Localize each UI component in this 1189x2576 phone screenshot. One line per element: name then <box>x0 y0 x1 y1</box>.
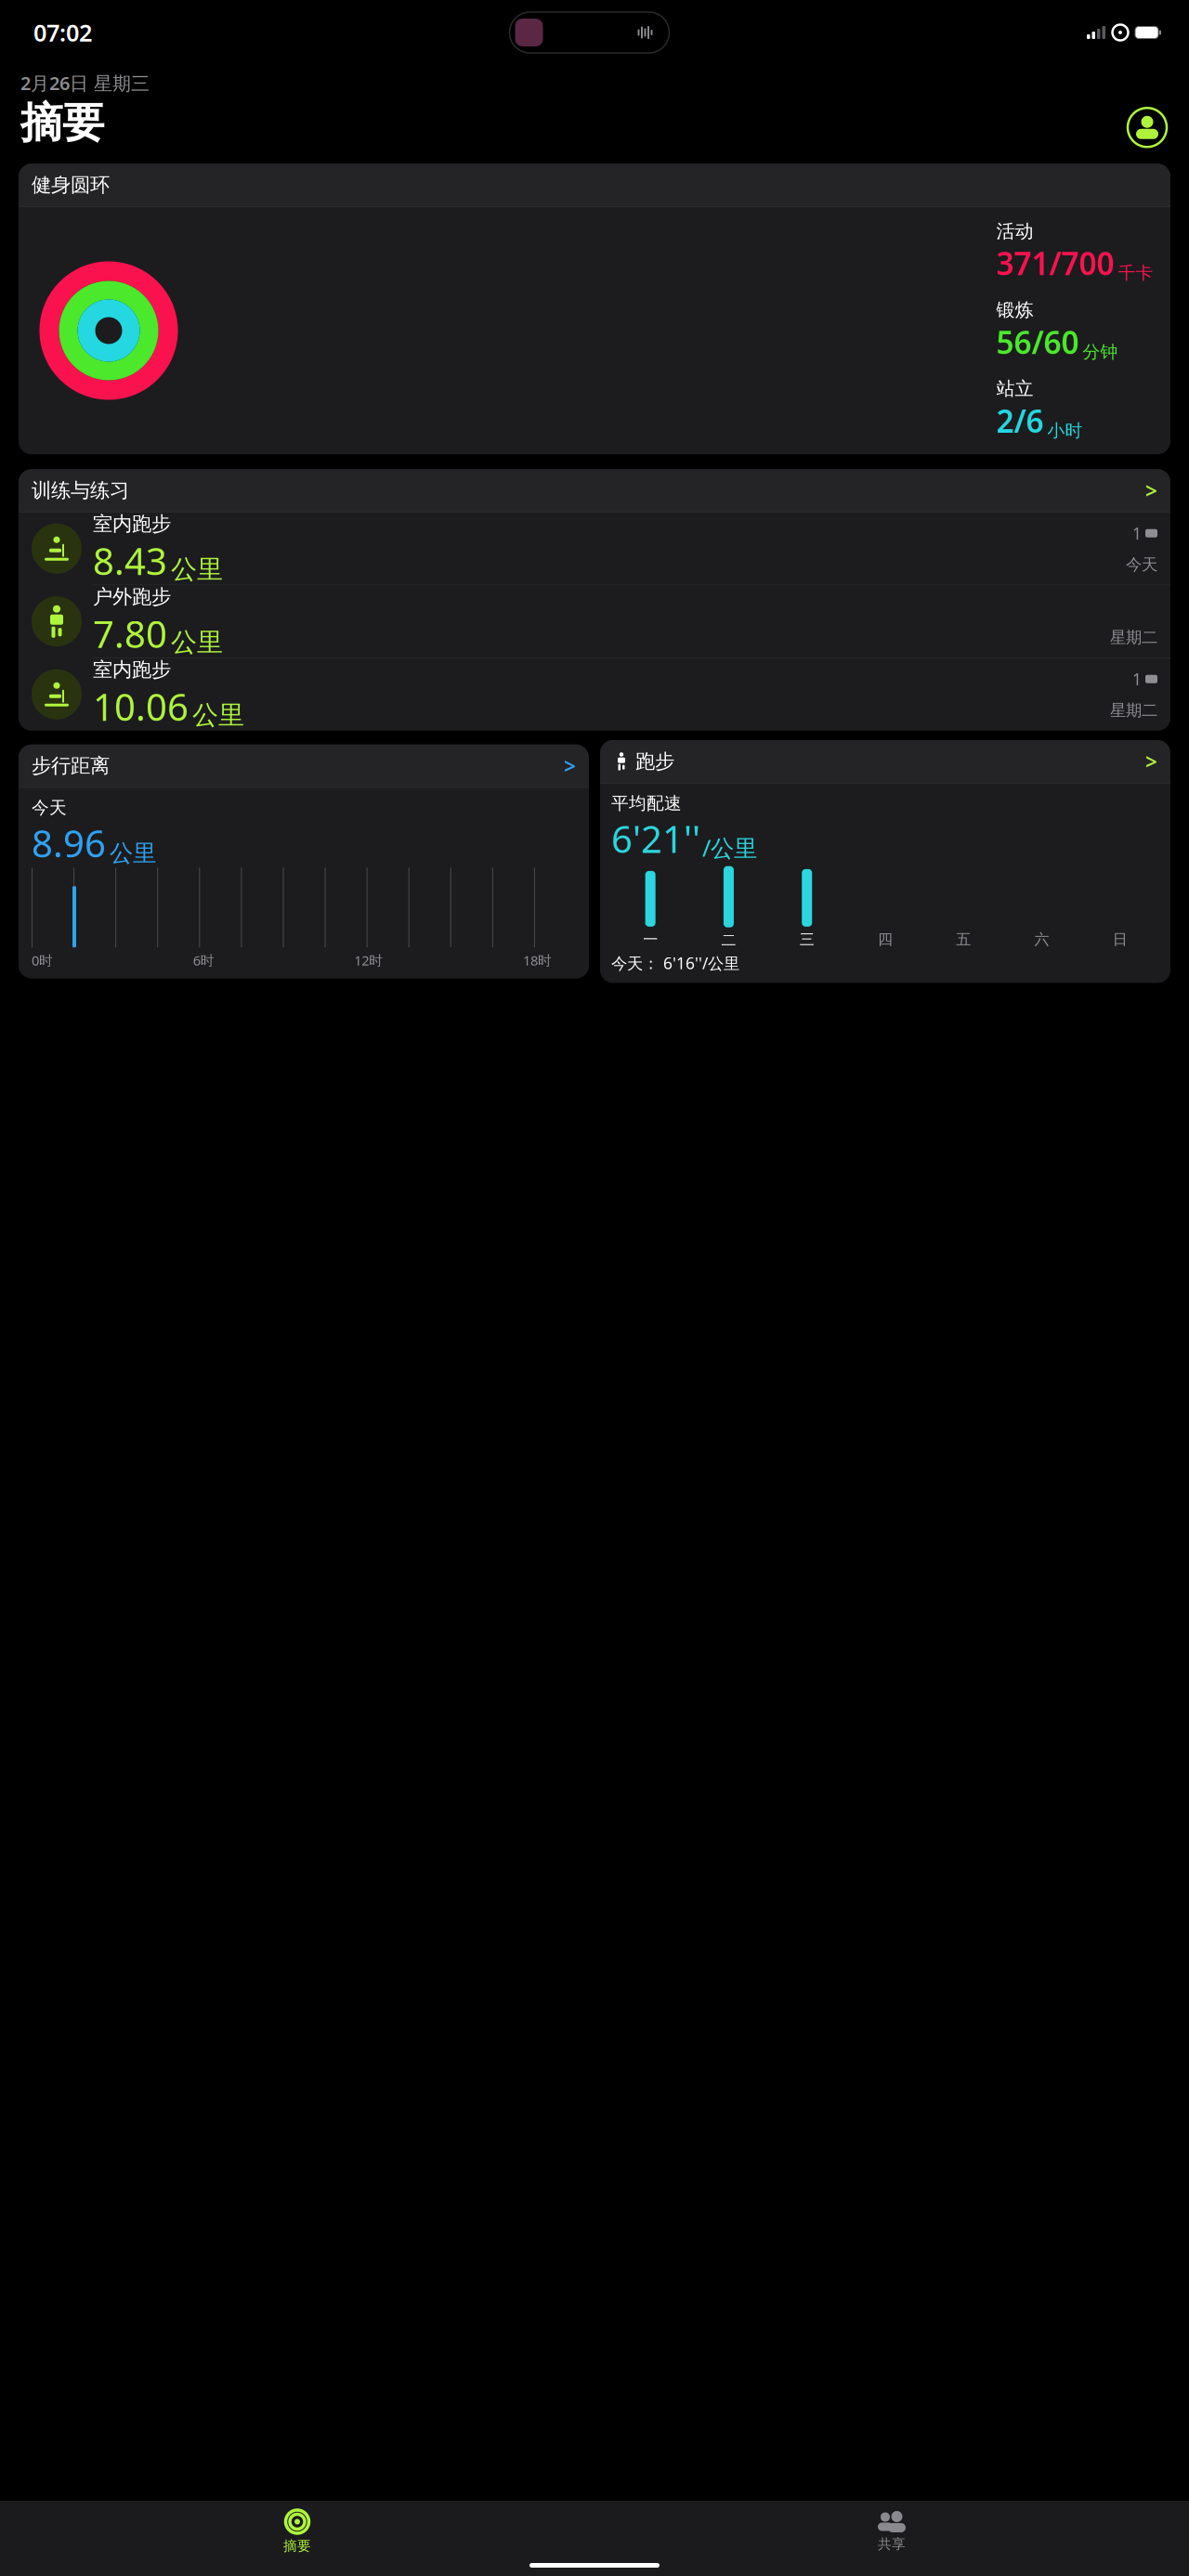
staticText: 1 <box>1132 668 1142 690</box>
staticText: 公里 <box>192 699 244 731</box>
button[interactable]: 步行距离 <box>19 744 589 787</box>
staticText: 公里 <box>171 553 223 585</box>
staticText: 步行距离 <box>32 754 110 778</box>
staticText: 日 <box>1113 930 1128 949</box>
staticText: 室内跑步 <box>93 658 171 682</box>
staticText: 371/700 <box>996 243 1114 284</box>
staticText: 二 <box>721 931 736 949</box>
staticText: 2月26日 星期三 <box>20 71 150 95</box>
button[interactable]: 摘要 <box>0 2501 594 2554</box>
staticText: 0时 <box>32 951 53 969</box>
button[interactable]: 室内跑步 <box>19 512 1170 585</box>
button[interactable]: 室内跑步 <box>19 658 1170 731</box>
staticText: 三 <box>800 930 814 949</box>
staticText: 公里 <box>110 839 156 868</box>
staticText: > <box>1145 477 1157 505</box>
staticText: 56/60 <box>996 321 1079 363</box>
staticText: 07:02 <box>33 17 92 48</box>
staticText: 锻炼 <box>996 299 1033 321</box>
button[interactable]: 共享 <box>594 2503 1189 2552</box>
staticText: 公里 <box>171 626 223 658</box>
staticText: 18时 <box>523 951 552 969</box>
staticText: 8.96 <box>32 818 106 868</box>
staticText: 6'21'' <box>611 814 700 863</box>
staticText: 今天 <box>32 797 67 818</box>
staticText: 1 <box>1132 523 1142 544</box>
button[interactable]: 户外跑步 <box>19 585 1170 658</box>
staticText: 8.43 <box>93 536 167 585</box>
staticText: 站立 <box>996 377 1033 400</box>
staticText: 今天 <box>1126 555 1157 575</box>
staticText: 训练与练习 <box>32 478 129 503</box>
button[interactable]: 训练与练习 <box>19 469 1170 512</box>
staticText: > <box>564 752 576 780</box>
staticText: 星期二 <box>1110 701 1157 720</box>
staticText: 健身圆环 <box>32 173 110 197</box>
staticText: 小时 <box>1047 420 1083 441</box>
button[interactable]: 跑步 <box>600 740 1170 783</box>
staticText: 五 <box>956 930 971 949</box>
staticText: 摘要 <box>283 2537 311 2554</box>
staticText: 六 <box>1034 930 1049 949</box>
staticText: 2/6 <box>996 400 1044 441</box>
button[interactable]: 个人资料 <box>1126 106 1169 149</box>
staticText: 平均配速 <box>611 792 682 814</box>
staticText: 活动 <box>996 220 1033 243</box>
staticText: 千卡 <box>1118 262 1153 284</box>
staticText: 星期二 <box>1110 628 1157 647</box>
staticText: 跑步 <box>635 749 674 774</box>
staticText: > <box>1145 747 1157 775</box>
staticText: 四 <box>878 930 893 949</box>
staticText: 12时 <box>354 951 383 969</box>
staticText: 7.80 <box>93 609 167 658</box>
staticText: 10.06 <box>93 682 189 731</box>
staticText: 今天： 6'16''/公里 <box>611 952 739 974</box>
staticText: 6时 <box>193 951 214 969</box>
staticText: /公里 <box>702 832 757 863</box>
staticText: 一 <box>643 930 658 949</box>
staticText: 分钟 <box>1083 341 1118 363</box>
staticText: 户外跑步 <box>93 585 171 609</box>
staticText: 共享 <box>878 2536 906 2552</box>
staticText: 室内跑步 <box>93 512 171 536</box>
staticText: 摘要 <box>20 97 104 149</box>
button[interactable]: 健身圆环 <box>19 164 1170 206</box>
